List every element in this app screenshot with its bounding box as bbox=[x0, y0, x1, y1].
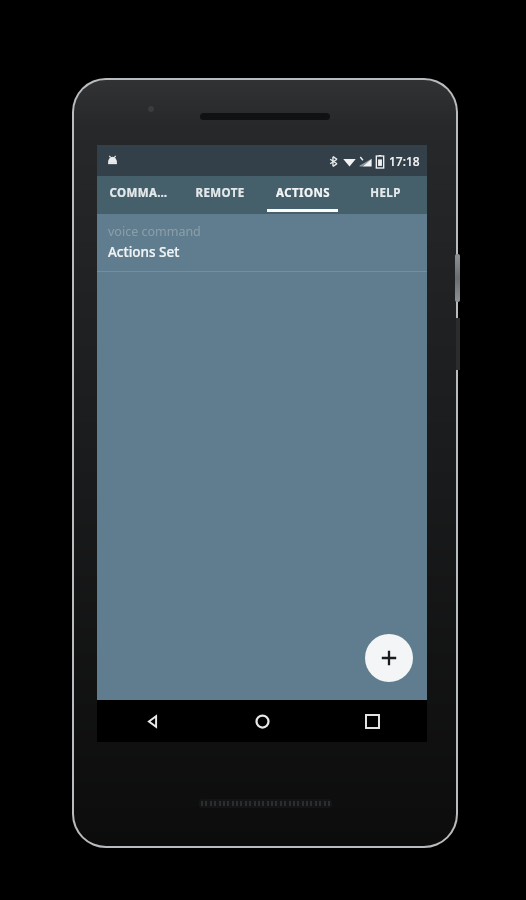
button[interactable]: Home bbox=[207, 700, 317, 742]
button[interactable]: Back bbox=[97, 700, 207, 742]
button[interactable]: Recent apps bbox=[317, 700, 427, 742]
staticText: 17:18 bbox=[389, 153, 420, 169]
button[interactable]: voice command bbox=[97, 214, 427, 271]
staticText: ACTIONS bbox=[276, 185, 330, 201]
staticText: REMOTE bbox=[195, 185, 245, 201]
button[interactable]: Add action bbox=[365, 634, 413, 682]
staticText: HELP bbox=[370, 185, 401, 201]
staticText: voice command bbox=[108, 223, 201, 240]
button[interactable]: REMOTE bbox=[179, 176, 261, 214]
staticText: COMMA… bbox=[109, 185, 168, 201]
button[interactable]: COMMA… bbox=[97, 176, 179, 214]
staticText: Actions Set bbox=[108, 243, 180, 261]
button[interactable]: ACTIONS bbox=[261, 176, 344, 214]
button[interactable]: HELP bbox=[344, 176, 427, 214]
